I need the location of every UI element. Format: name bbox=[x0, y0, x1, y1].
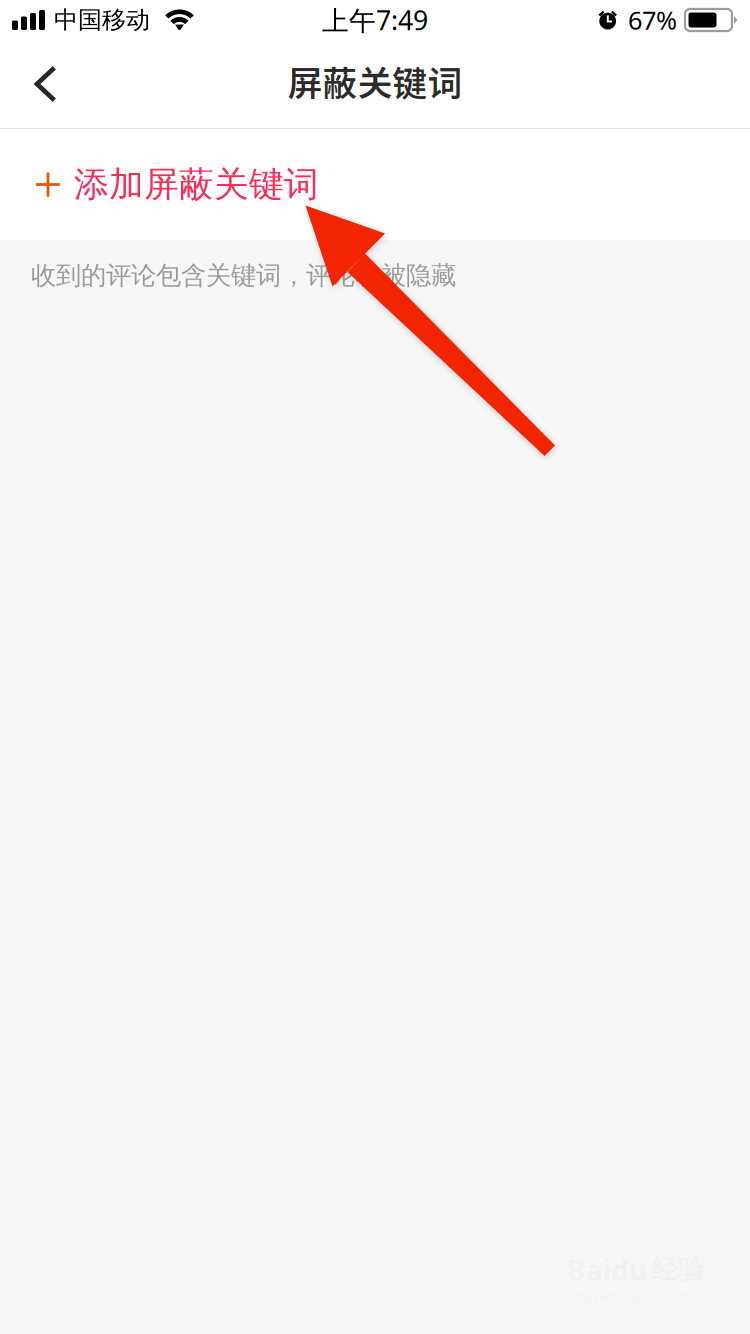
staticText: 收到的评论包含关键词，评论将被隐藏 bbox=[31, 260, 456, 291]
staticText: 上午7:49 bbox=[322, 2, 428, 38]
button[interactable]: 添加屏蔽关键词 bbox=[0, 129, 750, 240]
staticText: 中国移动 bbox=[54, 5, 150, 35]
staticText: 添加屏蔽关键词 bbox=[74, 163, 319, 206]
staticText: 67% bbox=[628, 3, 677, 37]
staticText: 屏蔽关键词 bbox=[287, 56, 462, 106]
button[interactable]: Back bbox=[0, 40, 100, 128]
